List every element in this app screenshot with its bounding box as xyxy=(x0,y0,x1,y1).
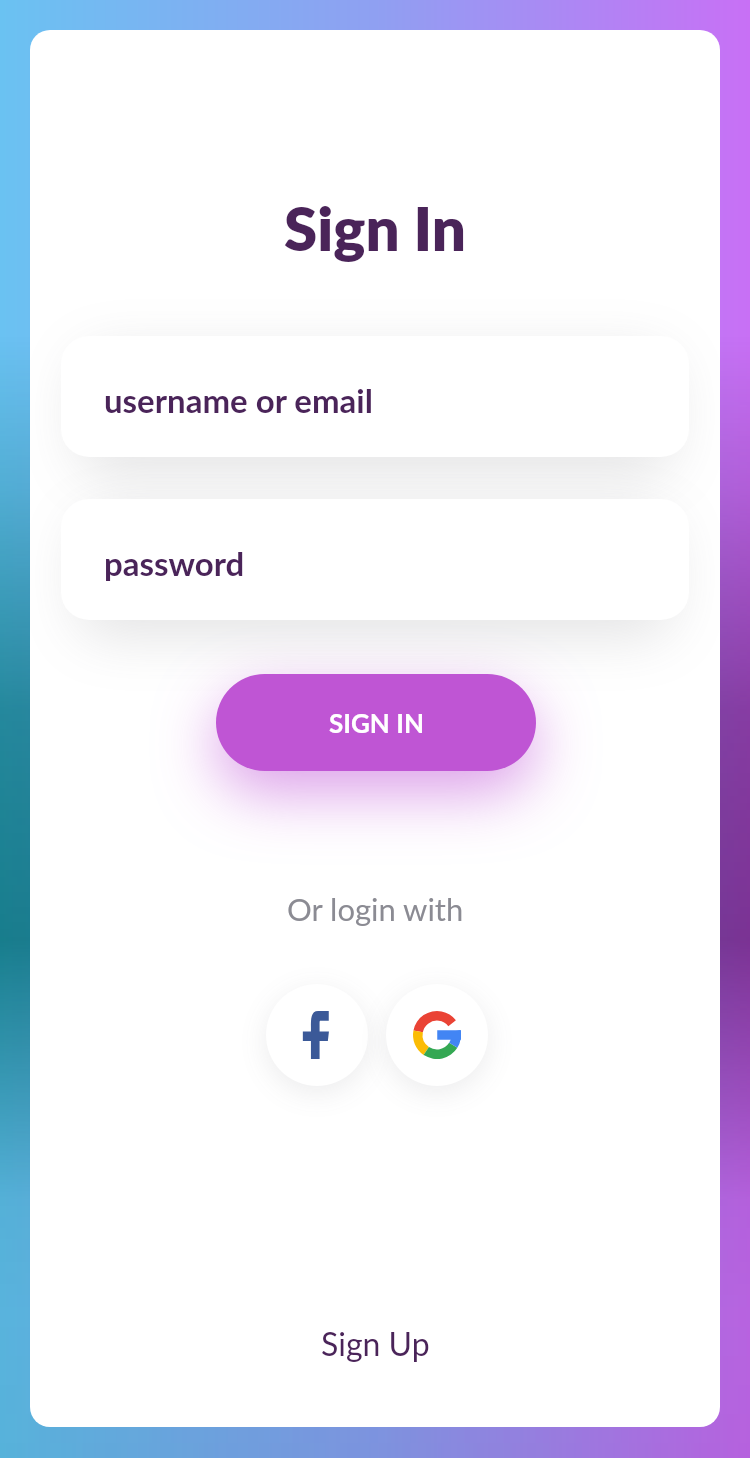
button[interactable]: Sign Up xyxy=(305,1316,446,1370)
button[interactable]: Sign in with Google xyxy=(386,984,488,1086)
staticText: username or email xyxy=(104,380,373,420)
staticText: password xyxy=(104,543,245,583)
staticText: Sign Up xyxy=(321,1324,430,1362)
button[interactable]: SIGN IN xyxy=(216,674,536,771)
button[interactable]: password xyxy=(61,499,689,620)
staticText: Or login with xyxy=(287,890,464,927)
staticText: SIGN IN xyxy=(329,707,424,738)
staticText: Sign In xyxy=(284,192,466,264)
button[interactable]: username or email xyxy=(61,336,689,457)
button[interactable]: Sign in with Facebook xyxy=(266,984,368,1086)
